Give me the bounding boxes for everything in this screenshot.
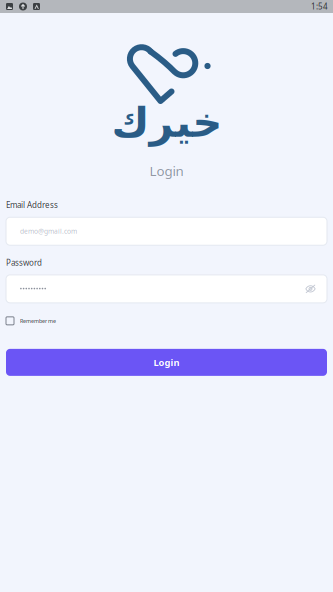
staticText: demo@gmail.com bbox=[20, 227, 77, 236]
staticText: Login bbox=[153, 356, 179, 369]
staticText: Password bbox=[6, 257, 42, 268]
staticText: 1:54 bbox=[311, 1, 328, 12]
staticText: خيرك bbox=[111, 99, 222, 146]
button[interactable]: Login bbox=[6, 349, 327, 376]
staticText: Login bbox=[149, 162, 183, 180]
button[interactable]: Show password bbox=[305, 284, 316, 294]
button[interactable]: Remember me bbox=[0, 311, 333, 331]
staticText: Remember me bbox=[20, 317, 56, 324]
staticText: Email Address bbox=[6, 200, 58, 210]
